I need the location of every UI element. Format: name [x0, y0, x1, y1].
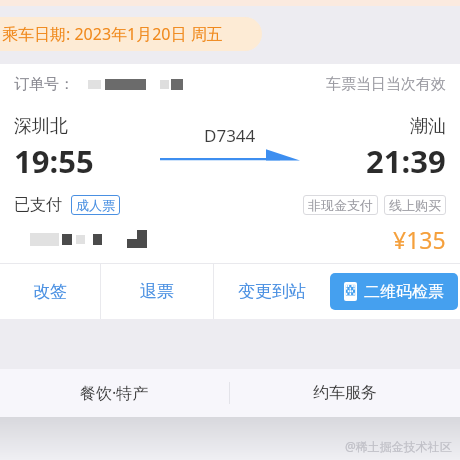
staticText: 订单号： — [14, 75, 74, 94]
staticText: 线上购买 — [389, 197, 441, 213]
button[interactable]: 约车服务 — [230, 369, 460, 417]
button[interactable]: 改签 — [0, 264, 100, 319]
button[interactable]: 餐饮·特产 — [0, 369, 229, 417]
staticText: 改签 — [33, 281, 67, 302]
button[interactable]: 退票 — [101, 264, 213, 319]
button[interactable]: 变更到站 — [214, 264, 330, 319]
staticText: 乘车日期: 2023年1月20日 周五 — [2, 23, 223, 45]
button[interactable]: 乘车日期: 2023年1月20日 周五 — [0, 17, 262, 51]
staticText: 变更到站 — [238, 281, 306, 302]
staticText: 成人票 — [76, 197, 115, 213]
staticText: 已支付 — [14, 195, 62, 215]
staticText: 深圳北 — [14, 115, 68, 138]
staticText: D7344 — [204, 124, 256, 147]
staticText: 19:55 — [14, 140, 94, 182]
staticText: 退票 — [140, 281, 174, 302]
staticText: 约车服务 — [313, 383, 377, 403]
staticText: 21:39 — [366, 140, 446, 182]
staticText: 车票当日当次有效 — [326, 75, 446, 94]
button[interactable]: 成人票 — [76, 197, 115, 213]
staticText: ¥135 — [393, 224, 446, 255]
staticText: 餐饮·特产 — [80, 382, 149, 404]
staticText: 潮汕 — [410, 115, 446, 138]
button[interactable]: QR code ticket check — [330, 273, 458, 310]
other: QR code ticket check — [344, 282, 357, 301]
staticText: 二维码检票 — [364, 282, 444, 302]
staticText: 非现金支付 — [308, 197, 373, 213]
staticText: @稀土掘金技术社区 — [345, 438, 452, 454]
